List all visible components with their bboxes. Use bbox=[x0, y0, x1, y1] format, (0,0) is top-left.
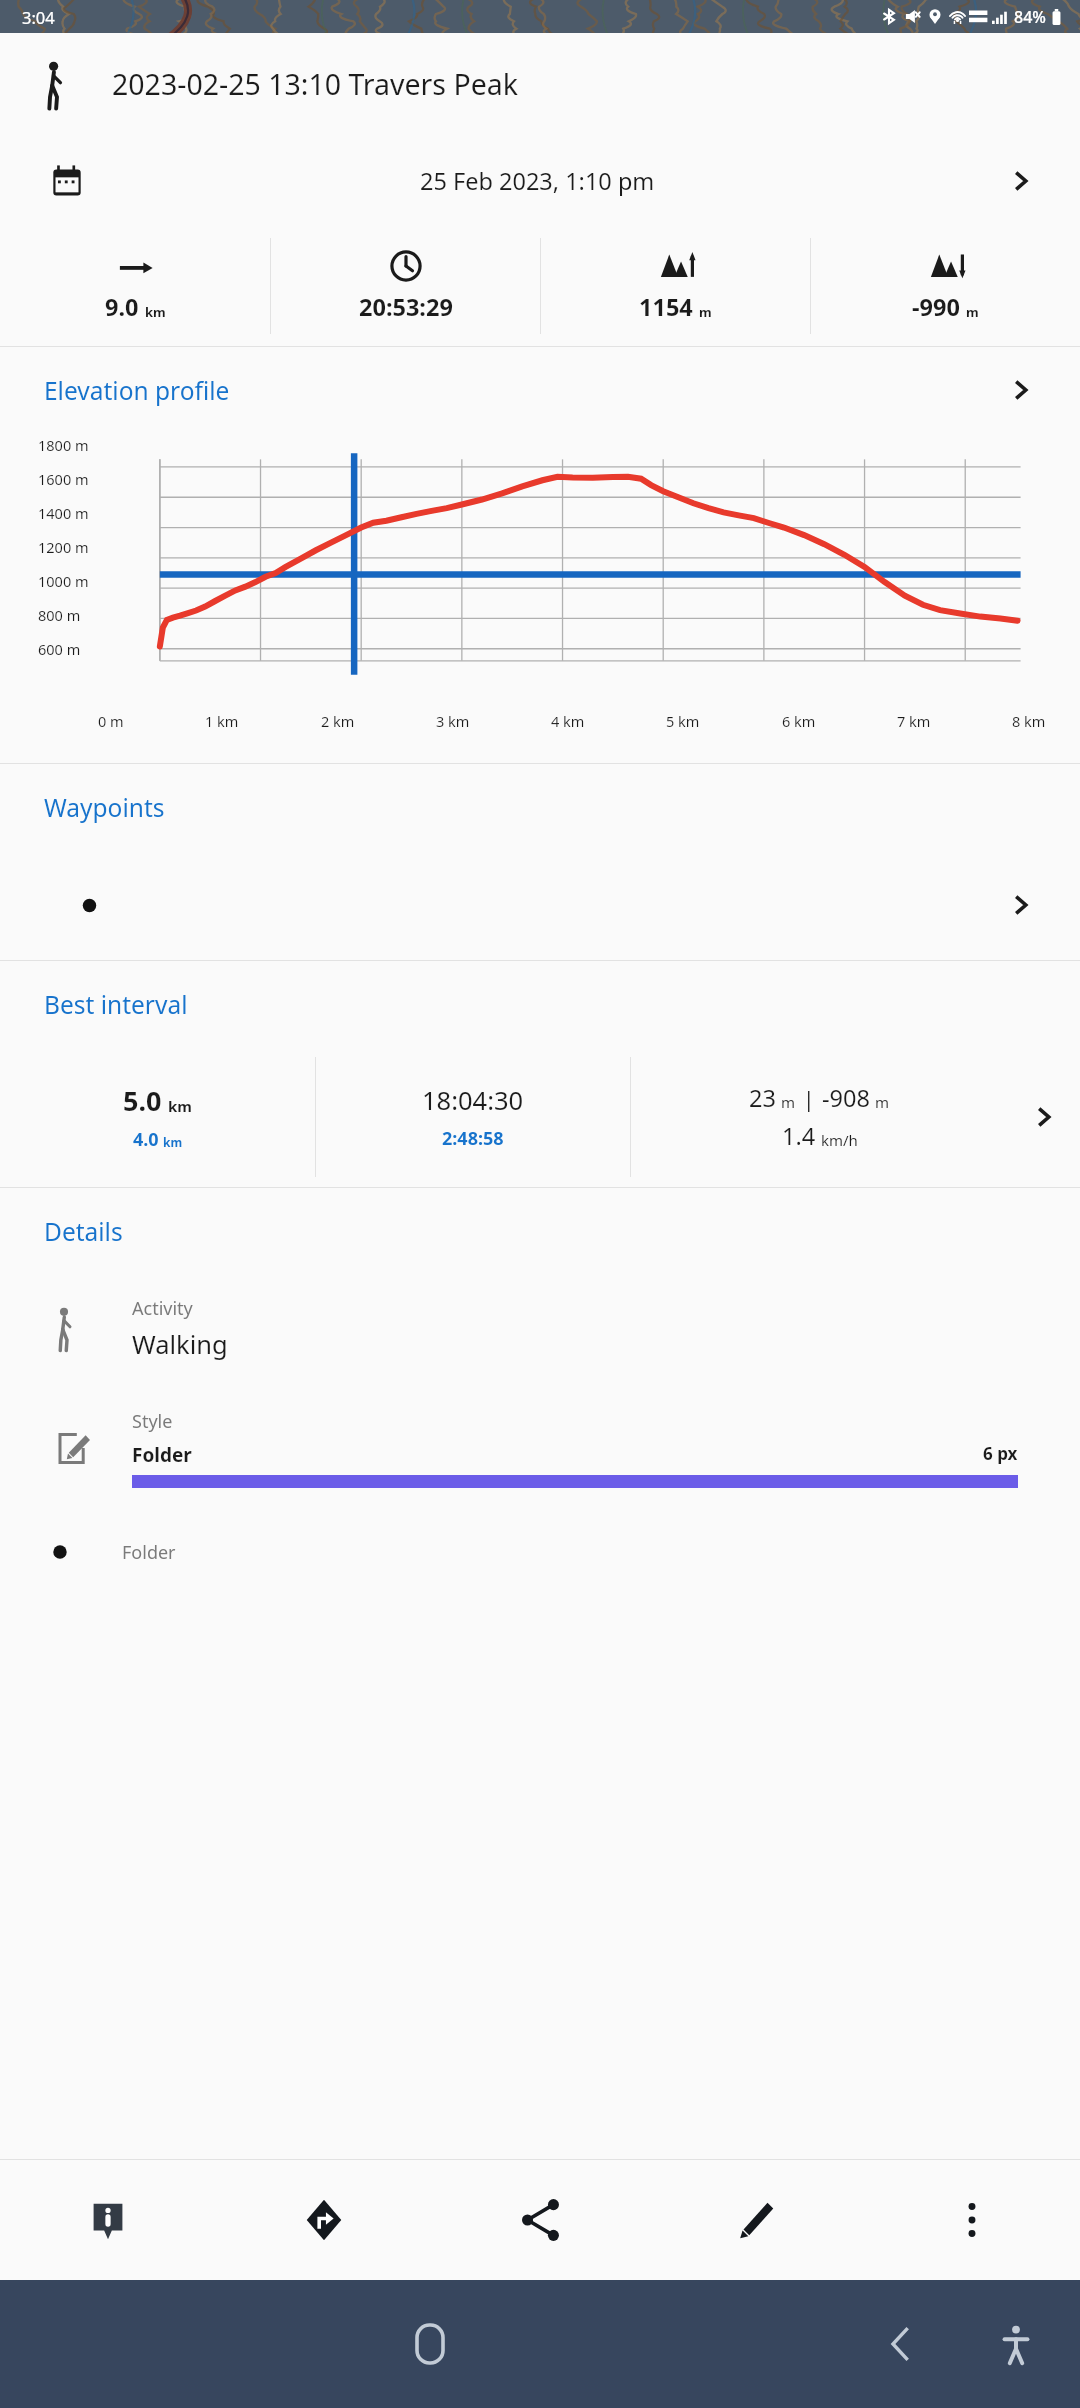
staticText: 1600 m bbox=[38, 469, 112, 489]
staticText: Style bbox=[132, 1409, 173, 1434]
button[interactable]: Waypoints bbox=[0, 764, 1080, 850]
button[interactable]: -990 bbox=[811, 226, 1080, 346]
staticText: 1 km bbox=[205, 711, 239, 731]
staticText: Details bbox=[44, 1215, 123, 1248]
button[interactable]: 25 Feb 2023, 1:10 pm bbox=[0, 136, 1080, 226]
staticText: 1154 bbox=[639, 291, 693, 323]
staticText: m bbox=[781, 1092, 796, 1112]
button[interactable]: Info bbox=[0, 2160, 216, 2280]
button[interactable]: Home bbox=[390, 2304, 470, 2384]
staticText: km bbox=[145, 303, 166, 321]
staticText: -908 bbox=[822, 1082, 870, 1114]
staticText: km/h bbox=[821, 1130, 858, 1150]
staticText: Folder bbox=[122, 1540, 176, 1565]
staticText: 1800 m bbox=[38, 435, 112, 455]
staticText: 18:04:30 bbox=[422, 1083, 524, 1118]
staticText: 2023-02-25 13:10 Travers Peak bbox=[112, 65, 518, 104]
staticText: Walking bbox=[132, 1327, 228, 1362]
button[interactable]: Accessibility bbox=[976, 2304, 1056, 2384]
button[interactable]: Activity bbox=[0, 1274, 1080, 1384]
staticText: km bbox=[163, 1134, 183, 1150]
staticText: 8 km bbox=[1012, 711, 1046, 731]
staticText: 3 km bbox=[436, 711, 470, 731]
staticText: 5.0 bbox=[123, 1082, 162, 1119]
staticText: 9.0 bbox=[105, 291, 139, 323]
staticText: 20:53:29 bbox=[359, 291, 453, 323]
button[interactable]: 5.0 bbox=[0, 1047, 1080, 1187]
staticText: 5 km bbox=[666, 711, 700, 731]
button[interactable]: Share bbox=[432, 2160, 648, 2280]
staticText: 3:04 bbox=[22, 6, 55, 28]
staticText: 84% bbox=[1014, 6, 1046, 28]
staticText: Best interval bbox=[44, 988, 188, 1021]
button[interactable]: 1800 m bbox=[0, 433, 1080, 743]
staticText: m bbox=[966, 303, 979, 321]
staticText: 23 bbox=[749, 1082, 776, 1114]
button[interactable]: 1154 bbox=[541, 226, 810, 346]
button[interactable]: Edit bbox=[648, 2160, 864, 2280]
button[interactable]: Best interval bbox=[0, 961, 1080, 1047]
staticText: | bbox=[803, 1085, 815, 1114]
staticText: 1400 m bbox=[38, 503, 112, 523]
button[interactable] bbox=[0, 850, 1080, 960]
staticText: Activity bbox=[132, 1296, 193, 1321]
button[interactable]: 20:53:29 bbox=[271, 226, 540, 346]
staticText: m bbox=[875, 1092, 890, 1112]
button[interactable]: Style bbox=[0, 1384, 1080, 1512]
staticText: Elevation profile bbox=[44, 374, 230, 407]
other: Walking activity bbox=[40, 61, 74, 109]
staticText: 6 px bbox=[983, 1442, 1018, 1465]
staticText: 1200 m bbox=[38, 537, 112, 557]
staticText: 7 km bbox=[897, 711, 931, 731]
staticText: m bbox=[699, 303, 712, 321]
staticText: km bbox=[168, 1096, 192, 1116]
staticText: 1.4 bbox=[782, 1120, 816, 1152]
staticText: 800 m bbox=[38, 605, 112, 625]
staticText: -990 bbox=[912, 291, 960, 323]
staticText: 25 Feb 2023, 1:10 pm bbox=[420, 165, 655, 197]
button[interactable]: 9.0 bbox=[0, 226, 270, 346]
staticText: 2 km bbox=[321, 711, 355, 731]
staticText: 600 m bbox=[38, 639, 112, 659]
staticText: 2:48:58 bbox=[442, 1126, 504, 1151]
staticText: 0 m bbox=[98, 711, 124, 731]
button[interactable]: Details bbox=[0, 1188, 1080, 1274]
button[interactable]: Elevation profile bbox=[0, 347, 1080, 433]
button[interactable]: Walking activity bbox=[0, 33, 1080, 136]
staticText: 6 km bbox=[782, 711, 816, 731]
staticText: Folder bbox=[132, 1442, 192, 1468]
staticText: 4.0 bbox=[133, 1127, 159, 1152]
button[interactable]: Back bbox=[860, 2304, 940, 2384]
button[interactable]: Directions bbox=[216, 2160, 432, 2280]
staticText: 4 km bbox=[551, 711, 585, 731]
staticText: 1000 m bbox=[38, 571, 112, 591]
staticText: Waypoints bbox=[44, 791, 165, 824]
button[interactable]: Folder bbox=[0, 1512, 1080, 1592]
button[interactable]: More options bbox=[864, 2160, 1080, 2280]
